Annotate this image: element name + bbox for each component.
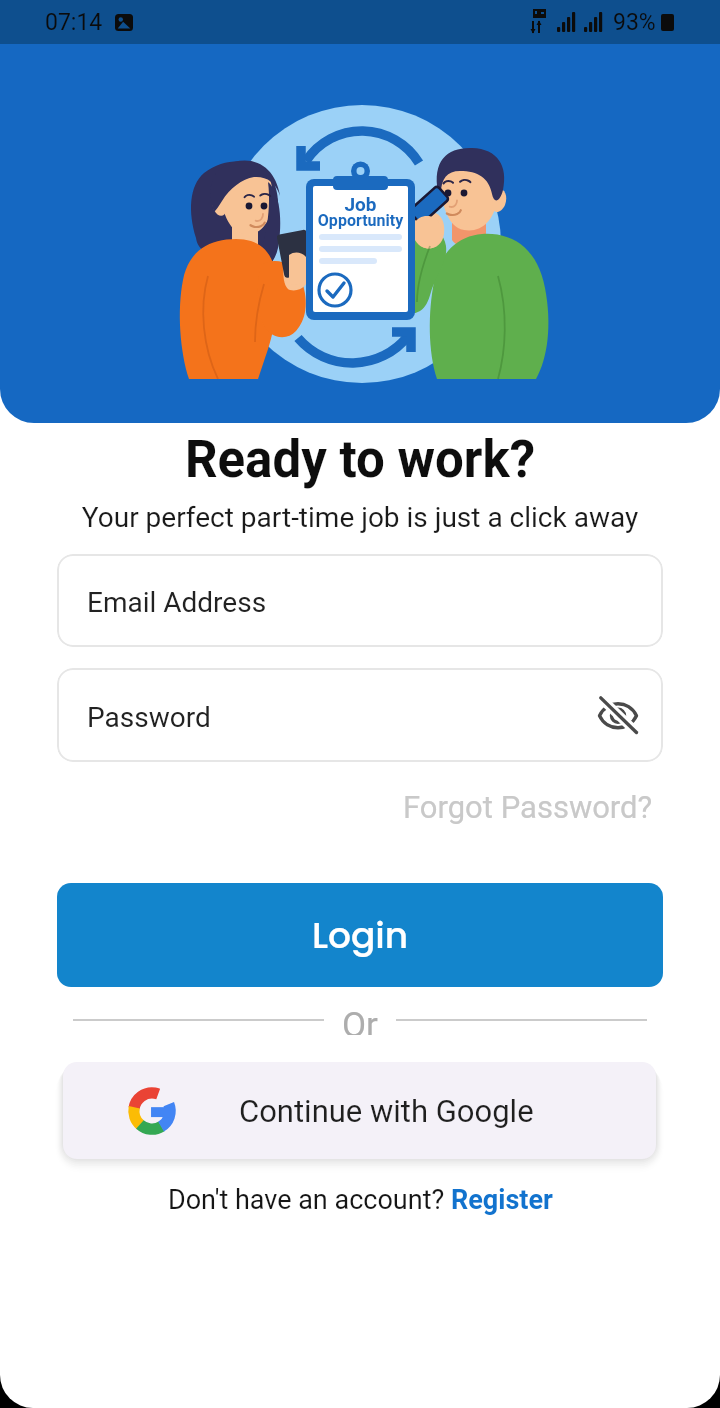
staticText: Opportunity: [286, 211, 435, 230]
staticText: Continue with Google: [239, 1093, 534, 1129]
staticText: Ready to work?: [0, 430, 720, 490]
button[interactable]: Forgot Password?: [403, 789, 720, 825]
button[interactable]: Register: [451, 1184, 553, 1216]
other: Show password: [597, 696, 639, 734]
staticText: Password: [87, 701, 211, 734]
button[interactable]: Login: [57, 883, 663, 987]
staticText: Your perfect part-time job is just a cli…: [0, 501, 720, 534]
staticText: Login: [312, 910, 409, 960]
staticText: Email Address: [87, 586, 267, 619]
staticText: 07:14: [45, 9, 103, 36]
staticText: 93%: [613, 9, 656, 36]
staticText: Or: [342, 1005, 378, 1035]
staticText: Don't have an account?: [168, 1184, 451, 1216]
button[interactable]: Password: [57, 668, 663, 762]
staticText: Job: [286, 193, 435, 215]
button[interactable]: Continue with Google: [63, 1062, 656, 1159]
button[interactable]: Email Address: [57, 554, 663, 647]
